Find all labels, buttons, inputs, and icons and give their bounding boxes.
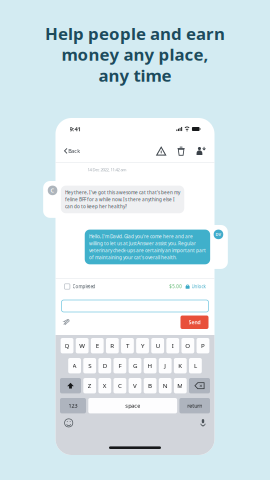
button[interactable]: Y [136,338,149,353]
staticText: O [185,341,190,350]
button[interactable]: Delete [189,378,210,393]
button[interactable]: space [88,398,177,413]
staticText: Y [141,341,144,350]
button[interactable]: Delete conversation [177,147,185,155]
button[interactable]: I [166,338,179,353]
staticText: Hello, I'm David. Glad you're come here … [89,233,193,240]
staticText: Send [188,319,200,326]
staticText: A [73,361,77,370]
staticText: can do to keep her healthy? [65,203,127,210]
button[interactable]: Completed [64,283,95,289]
button[interactable]: C [113,378,126,393]
button[interactable]: return [179,398,210,413]
button[interactable]: Back [64,147,80,155]
button[interactable]: Attach file [61,318,70,326]
button[interactable]: H [144,358,156,373]
button[interactable]: B [144,378,156,393]
button[interactable]: Add expert [196,147,205,155]
button[interactable]: O [181,338,194,353]
staticText: T [126,341,129,350]
button[interactable]: K [174,358,187,373]
button[interactable]: Shift [60,378,81,393]
button[interactable]: Send [180,315,208,329]
staticText: S [88,361,91,370]
staticText: Completed [72,283,95,289]
staticText: Q [65,341,70,350]
button[interactable]: Unlock [185,283,205,289]
staticText: Z [88,381,92,390]
staticText: Back [68,147,80,155]
staticText: W [79,341,85,350]
staticText: X [103,381,107,390]
staticText: K [178,361,182,370]
staticText: C [118,381,122,390]
button[interactable]: R [106,338,119,353]
staticText: × [199,381,202,389]
staticText: C [51,187,55,194]
button[interactable]: M [174,378,187,393]
staticText: any time [98,64,171,87]
staticText: F [118,361,121,370]
staticText: B [148,381,152,390]
staticText: E [96,341,99,350]
staticText: P [201,341,205,350]
button[interactable]: Z [83,378,96,393]
button[interactable]: Q [61,338,73,353]
button[interactable]: 123 [60,398,86,413]
button[interactable]: Report [157,147,166,155]
button[interactable]: V [129,378,141,393]
staticText: H [148,361,153,370]
button[interactable]: Dictate [200,419,205,427]
staticText: V [133,381,137,390]
staticText: feline BFF for a while now. Is there any… [65,196,175,203]
button[interactable]: X [98,378,111,393]
staticText: 14 Dec 2022, 11:42 am [87,167,126,172]
button[interactable]: Emoji keyboard [64,419,73,427]
staticText: of maintaining your cat's overall health… [89,254,177,261]
staticText: space [125,402,140,409]
staticText: Unlock [191,283,205,289]
button[interactable]: P [196,338,209,353]
staticText: R [110,341,114,350]
button[interactable]: S [83,358,96,373]
staticText: I [172,341,174,350]
staticText: DV [215,232,221,237]
staticText: G [133,361,137,370]
button[interactable]: F [113,358,126,373]
staticText: N [163,381,168,390]
staticText: money any place, [61,43,208,66]
button[interactable]: U [151,338,164,353]
staticText: return [187,402,202,409]
staticText: 123 [68,402,77,409]
button[interactable]: W [76,338,89,353]
staticText: Help people and earn [45,22,225,45]
staticText: willing to let us at JustAnswer assist y… [89,240,196,247]
button[interactable]: A [68,358,81,373]
button[interactable]: G [129,358,141,373]
button[interactable]: L [189,358,202,373]
button[interactable]: E [91,338,104,353]
staticText: M [177,381,183,390]
button[interactable]: N [159,378,172,393]
staticText: Hey there, I've got this awesome cat tha… [65,189,180,196]
button[interactable]: T [121,338,134,353]
staticText: L [194,361,197,370]
staticText: 9:41 [69,125,80,133]
staticText: D [103,361,107,370]
staticText: $5.00 [169,283,182,289]
staticText: veterinary check-ups are certainly an im… [89,247,206,254]
button[interactable]: J [159,358,172,373]
staticText: U [156,341,160,350]
staticText: J [164,361,166,370]
button[interactable]: D [98,358,111,373]
